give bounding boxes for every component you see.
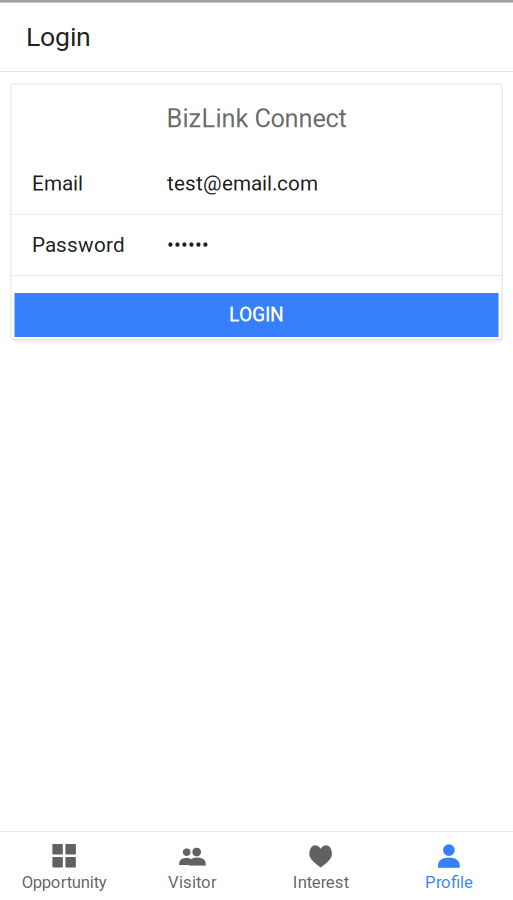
button[interactable]: Interest bbox=[256, 832, 385, 900]
button[interactable]: Opportunity bbox=[0, 832, 128, 900]
staticText: Visitor bbox=[168, 872, 217, 892]
staticText: BizLink Connect bbox=[166, 104, 346, 133]
staticText: test@email.com bbox=[167, 171, 318, 196]
staticText: Login bbox=[26, 21, 91, 53]
staticText: Email bbox=[32, 171, 83, 196]
staticText: Opportunity bbox=[22, 872, 107, 892]
button[interactable]: LOGIN bbox=[14, 293, 498, 337]
staticText: Interest bbox=[293, 872, 349, 892]
button[interactable]: Visitor bbox=[128, 832, 256, 900]
staticText: LOGIN bbox=[229, 304, 284, 326]
staticText: Password bbox=[32, 233, 125, 257]
staticText: •••••• bbox=[167, 233, 209, 257]
staticText: Profile bbox=[425, 872, 473, 892]
button[interactable]: Profile bbox=[385, 832, 513, 900]
